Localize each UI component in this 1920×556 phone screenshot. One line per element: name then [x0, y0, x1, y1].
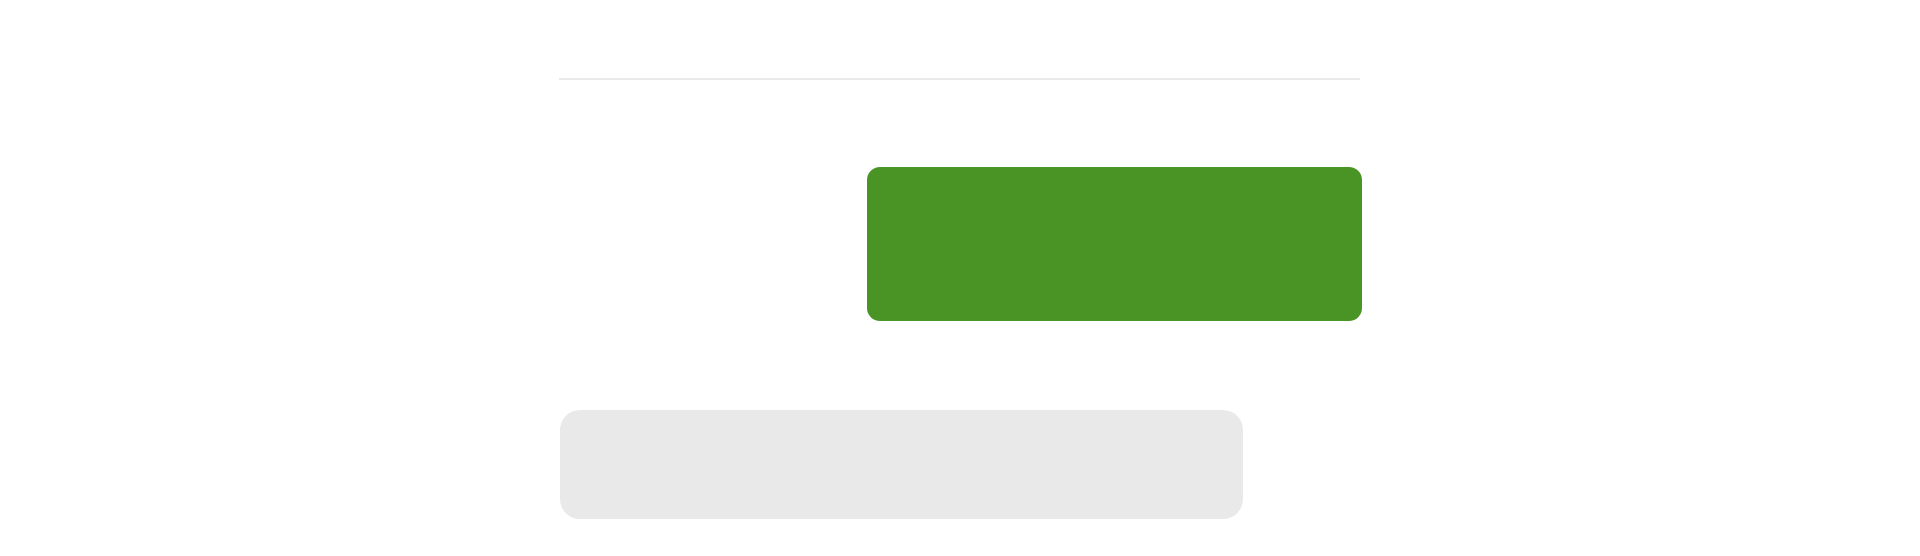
- button[interactable]: Primary action: [867, 167, 1362, 321]
